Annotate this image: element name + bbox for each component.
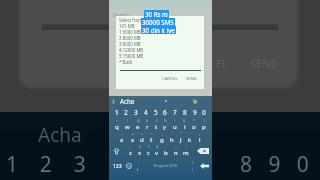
button[interactable]: 7 <box>173 106 177 118</box>
button[interactable]: + <box>174 144 178 157</box>
staticText: ( <box>204 119 205 123</box>
staticText: 3 <box>134 108 138 117</box>
staticText: h <box>170 136 174 144</box>
button[interactable]: & <box>155 144 159 157</box>
staticText: _ <box>130 145 132 149</box>
button[interactable]: Acha <box>109 96 212 106</box>
button[interactable]: SEND <box>185 75 198 83</box>
staticText: q <box>115 123 119 131</box>
staticText: EL <box>216 56 228 71</box>
staticText: $ <box>156 119 158 123</box>
button[interactable]: " <box>180 132 182 144</box>
button[interactable]: # <box>146 118 149 132</box>
staticText: * Back <box>119 59 133 65</box>
staticText: 30 din k lye <box>142 26 175 34</box>
button[interactable]: - <box>120 132 124 144</box>
staticText: ¥ <box>148 145 150 149</box>
button[interactable]: 123 <box>112 163 123 170</box>
staticText: t <box>155 123 158 131</box>
button[interactable]: Emoji <box>126 163 132 169</box>
button[interactable]: 3 <box>134 106 138 118</box>
staticText: v <box>155 149 159 157</box>
staticText: n <box>174 149 178 157</box>
button[interactable]: - <box>164 144 168 157</box>
staticText: g <box>160 136 164 144</box>
button[interactable]: 4 <box>144 106 148 118</box>
button[interactable]: CANCEL <box>161 75 179 83</box>
staticText: . <box>192 165 194 172</box>
staticText: u <box>173 123 177 131</box>
button[interactable]: ( <box>183 144 189 157</box>
staticText: ( <box>186 145 187 149</box>
staticText: & <box>156 145 159 149</box>
staticText: SEND <box>186 76 197 82</box>
button[interactable]: 6 <box>163 106 167 118</box>
staticText: Acha <box>120 97 135 105</box>
button[interactable]: = <box>140 132 144 144</box>
button[interactable]: ! <box>125 118 130 132</box>
button[interactable]: & <box>183 118 186 132</box>
button[interactable]: ^ <box>173 118 177 132</box>
button[interactable]: % <box>163 118 167 132</box>
button[interactable]: € <box>138 144 142 157</box>
staticText: ¿ <box>199 132 201 136</box>
button[interactable]: + <box>131 132 134 144</box>
staticText: 1 <box>115 108 119 117</box>
button[interactable]: 8 <box>183 106 187 118</box>
button[interactable]: * <box>192 118 196 132</box>
staticText: = <box>141 132 143 136</box>
staticText: Acha <box>38 122 82 148</box>
staticText: o <box>192 123 196 131</box>
staticText: € <box>139 145 141 149</box>
button[interactable]: ; <box>160 132 164 144</box>
staticText: k <box>188 136 192 144</box>
staticText: ? <box>192 161 194 165</box>
staticText: y <box>163 123 167 131</box>
staticText: ! <box>138 161 139 165</box>
staticText: + <box>132 132 134 136</box>
button[interactable]: ¿ <box>199 132 201 144</box>
staticText: 6 <box>163 108 167 117</box>
staticText: - <box>121 132 123 136</box>
button[interactable]: Enter <box>197 163 209 169</box>
staticText: f <box>150 136 153 144</box>
button[interactable]: · <box>188 132 192 144</box>
staticText: ~ <box>116 119 118 123</box>
staticText: x <box>138 149 142 157</box>
button[interactable]: @ <box>136 118 140 132</box>
staticText: 3:9000 MB <box>119 41 141 47</box>
staticText: 1 2 3 <box>6 150 86 179</box>
staticText: Search <box>113 12 129 19</box>
button[interactable]: : <box>150 132 153 144</box>
button[interactable]: ¥ <box>147 144 150 157</box>
staticText: ^ <box>174 119 176 123</box>
button[interactable]: 5 <box>154 106 158 118</box>
staticText: # <box>146 119 149 123</box>
staticText: ' <box>172 132 173 136</box>
staticText: a <box>120 136 124 144</box>
staticText: + <box>175 145 177 149</box>
staticText: CANCEL <box>162 76 178 82</box>
staticText: r <box>146 123 149 131</box>
button[interactable]: 9 <box>193 106 197 118</box>
button[interactable]: Shift <box>112 146 121 155</box>
staticText: - <box>165 145 167 149</box>
staticText: l <box>199 136 201 144</box>
staticText: @ <box>137 119 140 123</box>
button[interactable]: 0 <box>202 106 206 118</box>
staticText: · <box>190 132 191 136</box>
button[interactable]: English (US) <box>139 159 192 173</box>
button[interactable]: 1 <box>115 106 119 118</box>
button[interactable]: _ <box>129 144 132 157</box>
staticText: d <box>140 136 144 144</box>
button[interactable]: Backspace <box>197 148 209 154</box>
staticText: p <box>202 123 206 131</box>
staticText: z <box>129 149 132 157</box>
button[interactable]: ~ <box>115 118 119 132</box>
staticText: 4 <box>144 108 148 117</box>
button[interactable]: $ <box>155 118 158 132</box>
button[interactable]: ' <box>170 132 174 144</box>
button[interactable]: ( <box>202 118 206 132</box>
button[interactable]: 2 <box>124 106 128 118</box>
button[interactable]: Search <box>109 7 212 23</box>
